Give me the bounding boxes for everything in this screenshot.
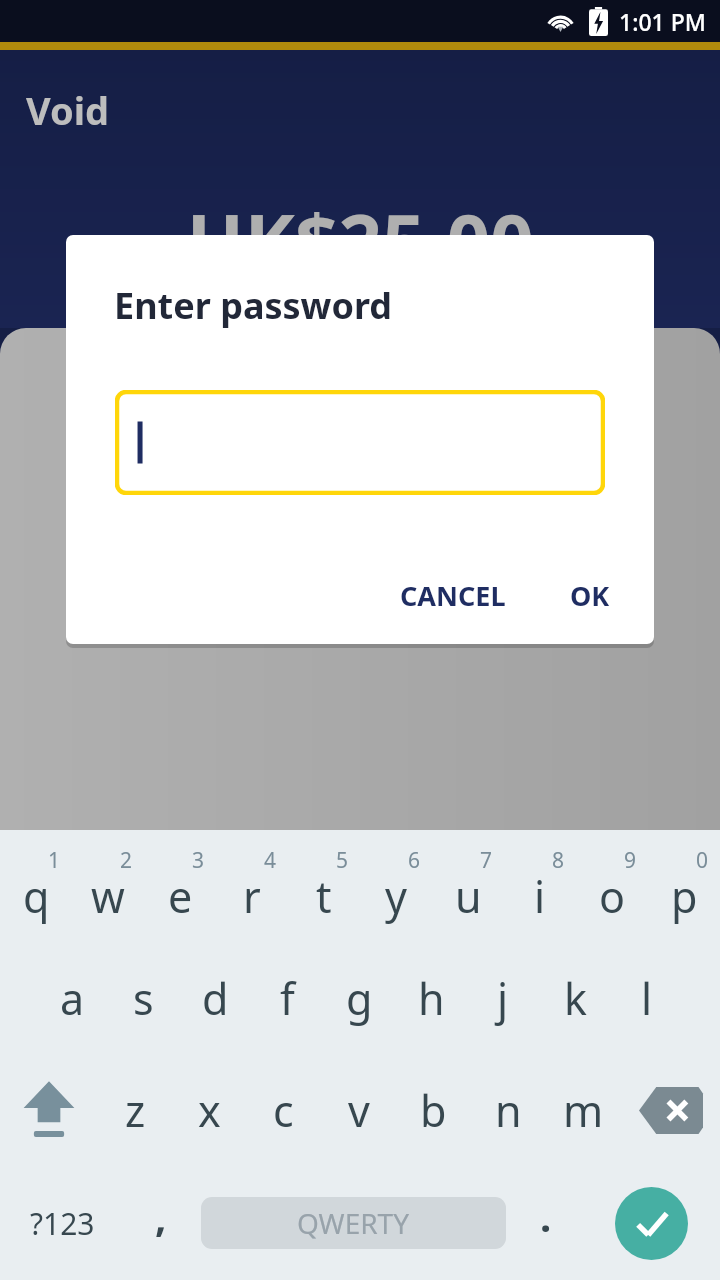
staticText: Void	[26, 84, 110, 136]
staticText: QWERTY	[297, 1204, 410, 1242]
button[interactable]: ?123	[0, 1166, 125, 1280]
staticText: d	[202, 969, 229, 1028]
button[interactable]: 0	[648, 830, 720, 942]
staticText: a	[60, 969, 85, 1028]
button[interactable]: Backspace	[621, 1054, 720, 1166]
staticText: Enter password	[114, 281, 393, 330]
button[interactable]: m	[546, 1054, 621, 1166]
button[interactable]: 8	[504, 830, 576, 942]
staticText: v	[348, 1081, 370, 1140]
button[interactable]: k	[539, 942, 611, 1054]
button[interactable]: x	[172, 1054, 246, 1166]
button[interactable]: j	[467, 942, 539, 1054]
button[interactable]: 3	[144, 830, 216, 942]
staticText: q	[23, 867, 50, 926]
button[interactable]: Enter	[582, 1166, 720, 1280]
button[interactable]: QWERTY	[201, 1197, 506, 1249]
button[interactable]: OK	[552, 563, 628, 628]
staticText: 1	[48, 846, 61, 875]
button[interactable]: l	[611, 942, 683, 1054]
staticText: r	[243, 867, 261, 926]
button[interactable]: d	[179, 942, 251, 1054]
staticText: j	[497, 969, 509, 1028]
button[interactable]: v	[321, 1054, 396, 1166]
button[interactable]: 2	[72, 830, 144, 942]
button[interactable]: .	[510, 1166, 582, 1280]
staticText: 7	[480, 846, 493, 875]
staticText: b	[420, 1081, 447, 1140]
staticText: CANCEL	[400, 577, 506, 614]
staticText: ?123	[30, 1203, 95, 1244]
button[interactable]: 7	[432, 830, 504, 942]
button[interactable]: h	[395, 942, 467, 1054]
staticText: 8	[552, 846, 565, 875]
staticText: h	[418, 969, 445, 1028]
staticText: i	[534, 867, 546, 926]
staticText: 9	[624, 846, 637, 875]
button[interactable]: 6	[360, 830, 432, 942]
button[interactable]: Password field	[115, 390, 605, 495]
staticText: ,	[155, 1189, 167, 1243]
button[interactable]: n	[471, 1054, 546, 1166]
button[interactable]: CANCEL	[382, 563, 524, 628]
staticText: n	[495, 1081, 522, 1140]
staticText: 6	[408, 846, 421, 875]
staticText: 1:01 PM	[619, 6, 706, 37]
staticText: OK	[570, 577, 610, 614]
button[interactable]: g	[323, 942, 395, 1054]
button[interactable]: Shift	[0, 1054, 98, 1166]
button[interactable]: b	[396, 1054, 471, 1166]
staticText: x	[198, 1081, 221, 1140]
staticText: l	[641, 969, 653, 1028]
staticText: m	[563, 1081, 604, 1140]
staticText: o	[599, 867, 626, 926]
staticText: 2	[120, 846, 133, 875]
staticText: z	[125, 1081, 146, 1140]
staticText: .	[540, 1189, 552, 1243]
button[interactable]: f	[251, 942, 323, 1054]
button[interactable]: 9	[576, 830, 648, 942]
button[interactable]: a	[37, 942, 108, 1054]
staticText: k	[564, 969, 587, 1028]
button[interactable]: 1	[0, 830, 72, 942]
staticText: 5	[336, 846, 349, 875]
staticText: t	[316, 867, 332, 926]
staticText: 3	[192, 846, 205, 875]
staticText: y	[385, 867, 407, 926]
button[interactable]: 5	[288, 830, 360, 942]
button[interactable]: 4	[216, 830, 288, 942]
staticText: g	[346, 969, 373, 1028]
button[interactable]: ,	[125, 1166, 197, 1280]
staticText: u	[455, 867, 482, 926]
staticText: e	[168, 867, 193, 926]
staticText: c	[273, 1081, 294, 1140]
button[interactable]: c	[246, 1054, 321, 1166]
button[interactable]: s	[108, 942, 179, 1054]
staticText: 0	[696, 846, 709, 875]
staticText: p	[671, 867, 698, 926]
staticText: 4	[264, 846, 277, 875]
staticText: s	[133, 969, 154, 1028]
staticText: HK$25.00	[0, 188, 720, 292]
staticText: f	[280, 969, 295, 1028]
button[interactable]: z	[98, 1054, 172, 1166]
staticText: w	[91, 867, 125, 926]
